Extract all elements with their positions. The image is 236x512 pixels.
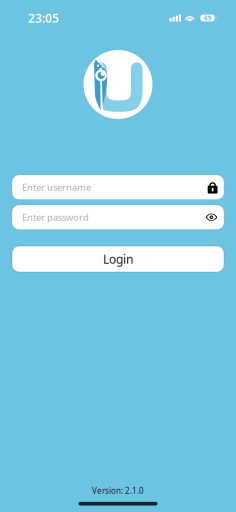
button[interactable]: Show password xyxy=(205,214,217,221)
staticText: 23:05 xyxy=(28,10,59,26)
staticText: 49 xyxy=(203,14,211,22)
staticText: Login xyxy=(103,251,133,267)
staticText: Enter username xyxy=(22,181,91,193)
button[interactable]: Username locked xyxy=(208,181,217,194)
staticText: Version: 2.1.0 xyxy=(92,485,144,496)
staticText: Enter password xyxy=(22,211,89,223)
button[interactable]: Login xyxy=(12,246,224,272)
